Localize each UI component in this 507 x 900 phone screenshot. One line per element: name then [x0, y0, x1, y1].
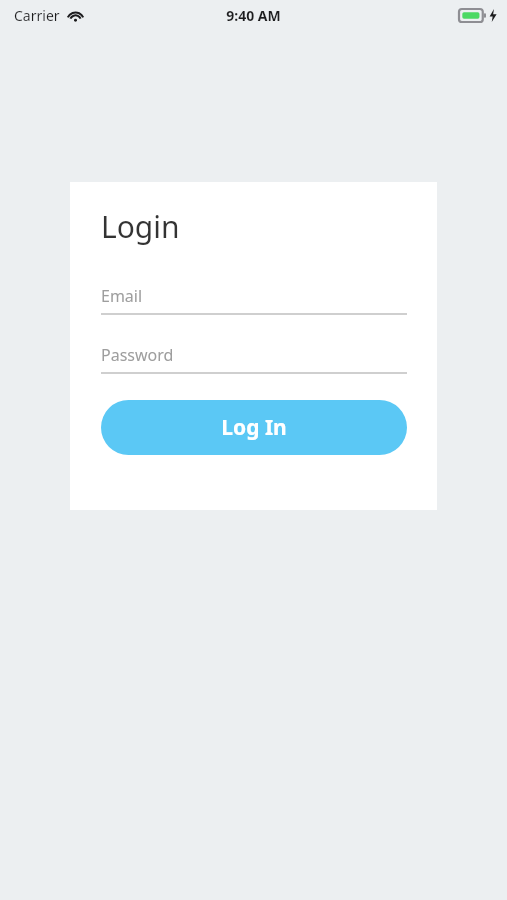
button[interactable]: Password — [101, 340, 407, 374]
button[interactable]: Email — [101, 281, 407, 315]
button[interactable]: Log In — [101, 400, 407, 455]
staticText: Email — [101, 285, 143, 307]
staticText: Password — [101, 344, 174, 366]
staticText: Login — [101, 206, 180, 247]
staticText: Carrier — [14, 6, 60, 25]
staticText: Log In — [221, 413, 287, 442]
staticText: 9:40 AM — [226, 6, 281, 25]
